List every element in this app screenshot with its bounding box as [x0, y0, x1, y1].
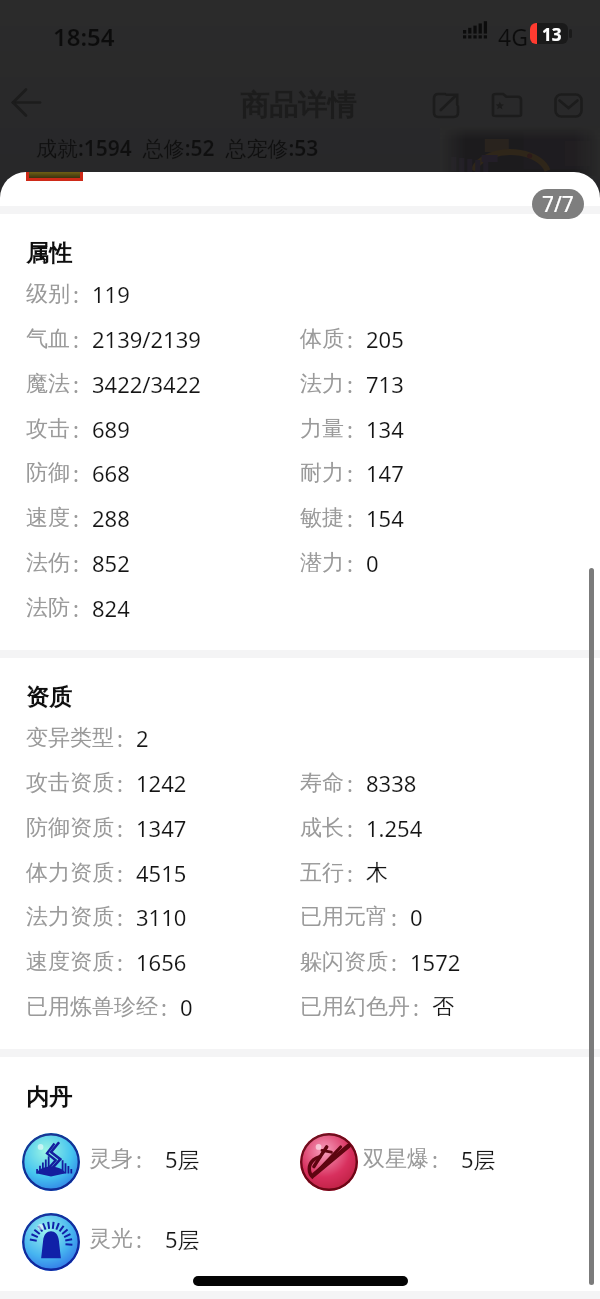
- staticText: 木: [366, 859, 388, 887]
- staticText: :: [73, 593, 79, 623]
- staticText: 1656: [136, 947, 187, 977]
- staticText: 级别: [26, 280, 70, 308]
- staticText: :: [73, 548, 79, 578]
- staticText: 法伤: [26, 549, 70, 577]
- staticText: :: [391, 947, 397, 977]
- staticText: 寿命: [300, 769, 344, 797]
- staticText: 速度: [26, 504, 70, 532]
- staticText: 法力: [300, 370, 344, 398]
- staticText: :: [136, 1144, 142, 1174]
- staticText: 0: [410, 902, 423, 932]
- staticText: :: [73, 324, 79, 354]
- staticText: :: [347, 548, 353, 578]
- staticText: 8338: [366, 768, 417, 798]
- staticText: 2: [136, 723, 149, 753]
- staticText: 法力资质: [26, 903, 114, 931]
- staticText: :: [161, 992, 167, 1022]
- staticText: 耐力: [300, 459, 344, 487]
- staticText: 属性: [26, 239, 72, 268]
- staticText: :: [347, 813, 353, 843]
- staticText: 154: [366, 503, 404, 533]
- staticText: 1347: [136, 813, 187, 843]
- staticText: 689: [92, 414, 130, 444]
- staticText: 147: [366, 458, 404, 488]
- staticText: 5层: [165, 1224, 200, 1254]
- staticText: 魔法: [26, 370, 70, 398]
- staticText: :: [117, 723, 123, 753]
- staticText: :: [117, 947, 123, 977]
- staticText: 商品详情: [240, 87, 356, 124]
- staticText: 668: [92, 458, 130, 488]
- staticText: 0: [366, 548, 379, 578]
- staticText: 205: [366, 324, 404, 354]
- staticText: 体力资质: [26, 859, 114, 887]
- staticText: 7/7: [542, 190, 574, 219]
- staticText: 躲闪资质: [300, 948, 388, 976]
- staticText: 3110: [136, 902, 187, 932]
- staticText: 1572: [410, 947, 461, 977]
- staticText: :: [136, 1224, 142, 1254]
- staticText: 824: [92, 593, 130, 623]
- staticText: 852: [92, 548, 130, 578]
- staticText: :: [347, 324, 353, 354]
- staticText: 3422/3422: [92, 369, 201, 399]
- staticText: 攻击资质: [26, 769, 114, 797]
- staticText: :: [117, 902, 123, 932]
- staticText: 0: [180, 992, 193, 1022]
- staticText: :: [347, 369, 353, 399]
- staticText: :: [347, 503, 353, 533]
- staticText: :: [117, 768, 123, 798]
- staticText: :: [432, 1144, 438, 1174]
- staticText: :: [347, 414, 353, 444]
- staticText: 五行: [300, 859, 344, 887]
- staticText: :: [73, 458, 79, 488]
- staticText: 攻击: [26, 415, 70, 443]
- staticText: 法防: [26, 594, 70, 622]
- staticText: :: [73, 279, 79, 309]
- staticText: :: [347, 458, 353, 488]
- staticText: 速度资质: [26, 948, 114, 976]
- staticText: 体质: [300, 325, 344, 353]
- staticText: 力量: [300, 415, 344, 443]
- staticText: :: [117, 813, 123, 843]
- staticText: 成就:1594 总修:52 总宠修:53: [36, 134, 319, 163]
- staticText: :: [73, 369, 79, 399]
- staticText: 成长: [300, 814, 344, 842]
- staticText: :: [413, 992, 419, 1022]
- staticText: 资质: [26, 683, 72, 712]
- button[interactable]: Messages: [540, 77, 596, 133]
- staticText: 双星爆: [363, 1145, 429, 1173]
- staticText: 灵身: [89, 1145, 133, 1173]
- staticText: 5层: [461, 1144, 496, 1174]
- staticText: 灵光: [89, 1225, 133, 1253]
- staticText: 变异类型: [26, 724, 114, 752]
- staticText: 134: [366, 414, 404, 444]
- staticText: 防御资质: [26, 814, 114, 842]
- staticText: 防御: [26, 459, 70, 487]
- button[interactable]: Share: [418, 77, 474, 133]
- staticText: 713: [366, 369, 404, 399]
- button[interactable]: Back: [1, 77, 51, 127]
- staticText: 5层: [165, 1144, 200, 1174]
- staticText: 288: [92, 503, 130, 533]
- staticText: 1242: [136, 768, 187, 798]
- staticText: 119: [92, 279, 130, 309]
- staticText: 已用炼兽珍经: [26, 993, 158, 1021]
- staticText: 已用元宵: [300, 903, 388, 931]
- staticText: 潜力: [300, 549, 344, 577]
- staticText: :: [391, 902, 397, 932]
- staticText: 2139/2139: [92, 324, 201, 354]
- staticText: 1.254: [366, 813, 423, 843]
- staticText: 已用幻色丹: [300, 993, 410, 1021]
- staticText: 敏捷: [300, 504, 344, 532]
- button[interactable]: Favorites: [479, 77, 535, 133]
- staticText: 气血: [26, 325, 70, 353]
- staticText: 内丹: [26, 1083, 72, 1112]
- staticText: :: [347, 858, 353, 888]
- staticText: :: [73, 503, 79, 533]
- staticText: :: [347, 768, 353, 798]
- staticText: 13: [542, 23, 562, 44]
- staticText: 否: [432, 993, 454, 1021]
- staticText: 18:54: [53, 20, 115, 53]
- staticText: :: [73, 414, 79, 444]
